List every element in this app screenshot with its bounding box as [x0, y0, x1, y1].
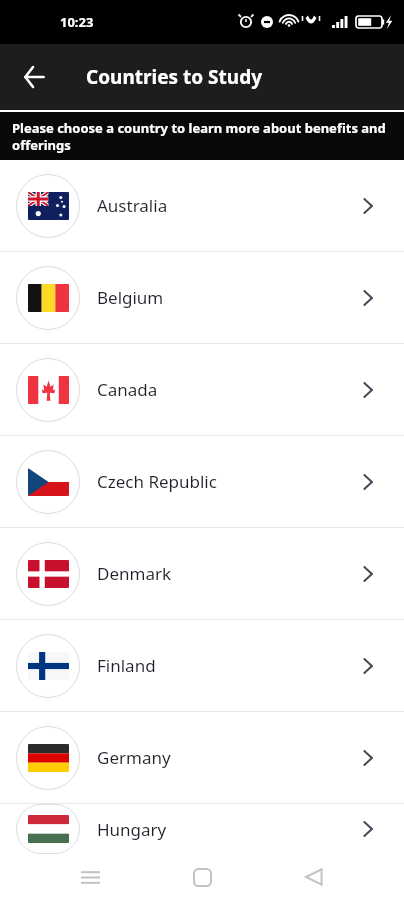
button[interactable]: Recents: [68, 855, 112, 899]
button[interactable]: Finland: [0, 620, 404, 711]
button[interactable]: Home: [180, 855, 224, 899]
staticText: Australia: [97, 194, 168, 217]
staticText: Germany: [97, 746, 171, 769]
staticText: Czech Republic: [97, 470, 217, 493]
button[interactable]: Hungary: [0, 804, 404, 854]
staticText: Countries to Study: [86, 64, 262, 90]
button[interactable]: Denmark: [0, 528, 404, 619]
button[interactable]: Back: [10, 53, 58, 101]
button[interactable]: Germany: [0, 712, 404, 803]
staticText: 10:23: [60, 13, 94, 31]
button[interactable]: Belgium: [0, 252, 404, 343]
button[interactable]: Canada: [0, 344, 404, 435]
staticText: Finland: [97, 654, 156, 677]
button[interactable]: Czech Republic: [0, 436, 404, 527]
button[interactable]: Australia: [0, 160, 404, 251]
button[interactable]: Back: [292, 855, 336, 899]
staticText: Hungary: [97, 818, 167, 841]
staticText: Canada: [97, 378, 158, 401]
staticText: Denmark: [97, 562, 172, 585]
staticText: Belgium: [97, 286, 164, 309]
staticText: Please choose a country to learn more ab…: [12, 119, 396, 154]
